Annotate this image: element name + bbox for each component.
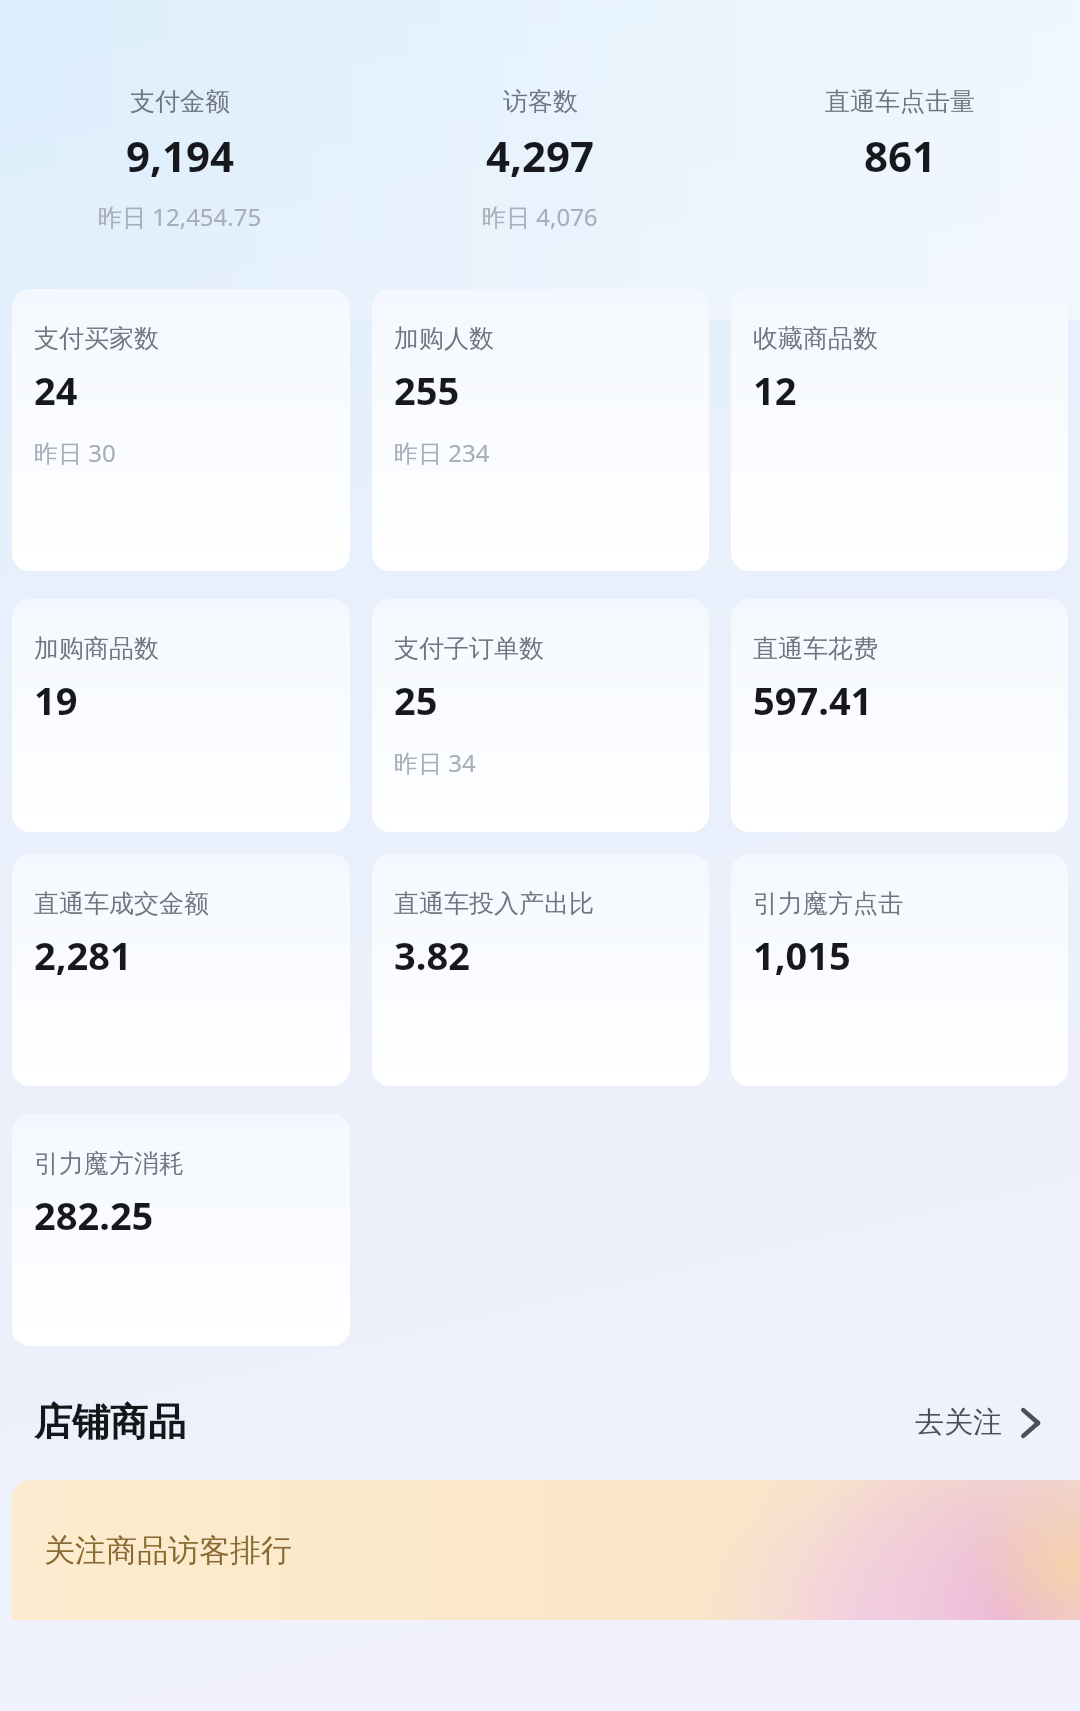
staticText: 861 bbox=[864, 127, 937, 184]
staticText: 直通车投入产出比 bbox=[394, 888, 594, 919]
staticText: 3.82 bbox=[394, 929, 470, 981]
staticText: 加购人数 bbox=[394, 323, 494, 354]
button[interactable]: 支付子订单数 bbox=[372, 599, 709, 832]
staticText: 引力魔方消耗 bbox=[34, 1148, 184, 1179]
staticText: 1,015 bbox=[753, 929, 851, 981]
staticText: 255 bbox=[394, 364, 460, 416]
staticText: 597.41 bbox=[753, 674, 873, 726]
staticText: 25 bbox=[394, 674, 438, 726]
staticText: 4,297 bbox=[486, 127, 595, 184]
staticText: 加购商品数 bbox=[34, 633, 159, 664]
staticText: 昨日 234 bbox=[394, 436, 490, 469]
staticText: 关注商品访客排行 bbox=[44, 1531, 292, 1570]
staticText: 12 bbox=[753, 364, 797, 416]
staticText: 支付金额 bbox=[130, 86, 230, 117]
button[interactable]: 加购商品数 bbox=[12, 599, 350, 832]
button[interactable]: 关注商品访客排行 bbox=[12, 1480, 1080, 1620]
staticText: 昨日 12,454.75 bbox=[98, 200, 262, 233]
other: Go to follow bbox=[1020, 1406, 1042, 1440]
staticText: 直通车点击量 bbox=[825, 86, 975, 117]
button[interactable]: 支付买家数 bbox=[12, 289, 350, 571]
button[interactable]: 直通车花费 bbox=[731, 599, 1068, 832]
staticText: 282.25 bbox=[34, 1189, 154, 1241]
button[interactable]: 访客数 bbox=[360, 86, 720, 233]
staticText: 去关注 bbox=[915, 1404, 1002, 1441]
staticText: 支付买家数 bbox=[34, 323, 159, 354]
staticText: 店铺商品 bbox=[34, 1398, 186, 1446]
button[interactable]: 直通车成交金额 bbox=[12, 854, 350, 1086]
staticText: 2,281 bbox=[34, 929, 132, 981]
button[interactable]: 加购人数 bbox=[372, 289, 709, 571]
staticText: 19 bbox=[34, 674, 78, 726]
staticText: 昨日 30 bbox=[34, 436, 116, 469]
staticText: 直通车成交金额 bbox=[34, 888, 209, 919]
staticText: 24 bbox=[34, 364, 78, 416]
staticText: 访客数 bbox=[503, 86, 578, 117]
staticText: 直通车花费 bbox=[753, 633, 878, 664]
staticText: 9,194 bbox=[126, 127, 235, 184]
staticText: 引力魔方点击 bbox=[753, 888, 903, 919]
button[interactable]: 直通车点击量 bbox=[720, 86, 1080, 200]
button[interactable]: 引力魔方消耗 bbox=[12, 1114, 350, 1346]
button[interactable]: 收藏商品数 bbox=[731, 289, 1068, 571]
button[interactable]: 引力魔方点击 bbox=[731, 854, 1068, 1086]
button[interactable]: 支付金额 bbox=[0, 86, 360, 233]
staticText: 昨日 4,076 bbox=[482, 200, 598, 233]
staticText: 支付子订单数 bbox=[394, 633, 544, 664]
button[interactable]: 去关注 bbox=[907, 1396, 1050, 1449]
staticText: 昨日 34 bbox=[394, 746, 476, 779]
button[interactable]: 直通车投入产出比 bbox=[372, 854, 709, 1086]
staticText: 收藏商品数 bbox=[753, 323, 878, 354]
